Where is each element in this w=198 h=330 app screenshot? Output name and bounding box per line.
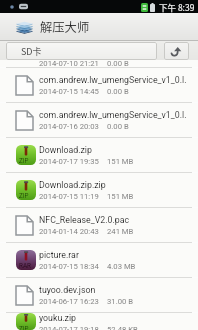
staticText: Download.zip.zip [39, 180, 106, 190]
button[interactable]: 解压大师 [0, 13, 198, 41]
staticText: 0.00 B [107, 87, 129, 96]
button[interactable]: NFC_Release_V2.0.pac [0, 208, 198, 242]
staticText: 解压大师 [40, 18, 90, 36]
staticText: com.andrew.lw_umengService_v1_0.l. [39, 75, 187, 85]
button[interactable]: ZIP [0, 173, 198, 207]
staticText: 2014-07-16 20:03 [39, 122, 99, 131]
staticText: 151 MB [107, 192, 134, 201]
button[interactable]: tuyoo.dev.json [0, 278, 198, 312]
staticText: ZIP [19, 325, 29, 330]
staticText: 2014-07-15 18:34 [39, 262, 99, 271]
staticText: ZIP [19, 192, 29, 199]
button[interactable]: RAR [0, 243, 198, 277]
staticText: 241 MB [107, 227, 134, 236]
staticText: youku.zip [39, 313, 77, 323]
staticText: 2014-07-15 14:45 [39, 87, 99, 96]
staticText: 31.00 B [107, 297, 134, 306]
staticText: 52.48 KB [107, 325, 138, 330]
button[interactable]: ZIP [0, 138, 198, 172]
staticText: 0.00 B [107, 60, 129, 66]
staticText: 151 MB [107, 157, 134, 166]
staticText: 2014-07-17 19:35 [39, 157, 99, 166]
staticText: Download.zip [39, 145, 92, 155]
staticText: 2014-07-10 21:21 [39, 60, 99, 66]
staticText: picture.rar [39, 250, 79, 260]
staticText: NFC_Release_V2.0.pac [39, 215, 130, 225]
button[interactable]: Up one level [164, 42, 189, 60]
staticText: SD卡 [21, 45, 42, 58]
staticText: 2014-07-17 19:18 [39, 325, 99, 330]
staticText: 4.03 MB [107, 262, 136, 271]
button[interactable]: ZIP [0, 313, 198, 330]
button[interactable]: 2014-07-10 21:21 [0, 60, 198, 67]
staticText: 2014-01-14 20:43 [39, 227, 99, 236]
button[interactable]: SD卡 [6, 42, 157, 60]
staticText: com.andrew.lw_umengService_v1_0.l. [39, 110, 187, 120]
button[interactable]: com.andrew.lw_umengService_v1_0.l. [0, 103, 198, 137]
staticText: 0.00 B [107, 122, 129, 131]
staticText: 2014-07-15 11:19 [39, 192, 99, 201]
staticText: RAR [19, 262, 31, 269]
staticText: ZIP [19, 157, 29, 164]
staticText: 下午 8:39 [159, 1, 195, 13]
button[interactable]: com.andrew.lw_umengService_v1_0.l. [0, 68, 198, 102]
staticText: tuyoo.dev.json [39, 285, 96, 295]
staticText: 2014-06-17 16:23 [39, 297, 99, 306]
